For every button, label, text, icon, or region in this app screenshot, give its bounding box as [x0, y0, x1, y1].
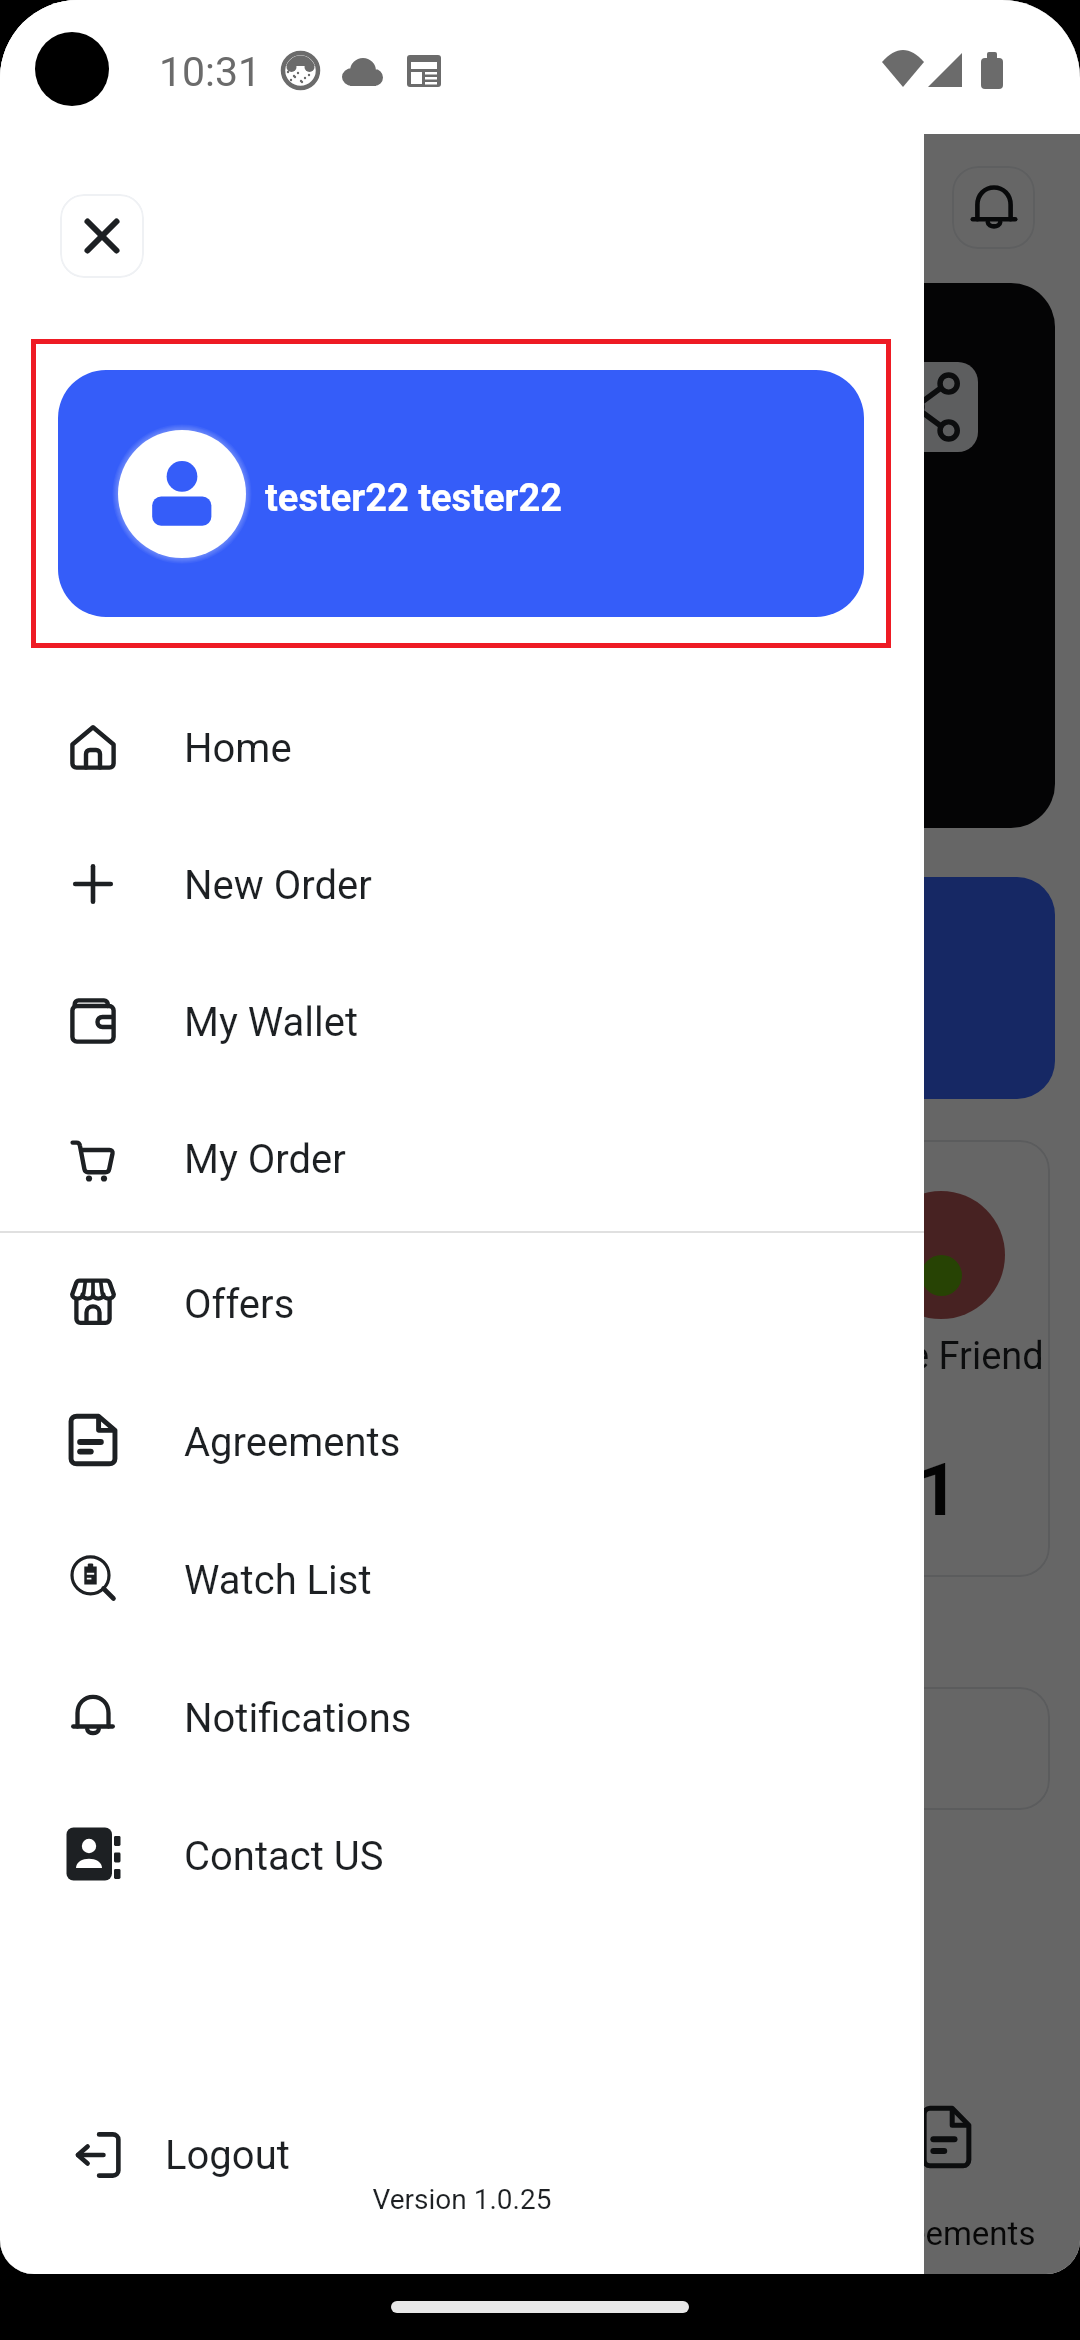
button[interactable]: Contact US: [0, 1785, 924, 1923]
button[interactable]: tester22 tester22: [58, 370, 864, 617]
button[interactable]: My Order: [0, 1089, 924, 1226]
staticText: e Friend: [909, 1334, 1044, 1379]
button[interactable]: Logout: [0, 2105, 924, 2205]
button[interactable]: Notifications: [0, 1647, 924, 1785]
staticText: Home: [184, 725, 292, 772]
staticText: New Order: [184, 862, 372, 909]
staticText: Notifications: [184, 1695, 412, 1742]
button[interactable]: Notifications: [952, 166, 1035, 249]
button[interactable]: Home: [0, 678, 924, 815]
staticText: Agreements: [184, 1419, 401, 1466]
staticText: tester22 tester22: [265, 476, 563, 521]
staticText: My Order: [184, 1136, 346, 1183]
staticText: 1: [917, 1448, 959, 1532]
staticText: My Wallet: [184, 999, 359, 1046]
button[interactable]: Offers: [0, 1233, 924, 1371]
button[interactable]: Agreements: [833, 2080, 1059, 2260]
button[interactable]: Watch List: [0, 1509, 924, 1647]
staticText: Watch List: [184, 1557, 372, 1604]
staticText: Offers: [184, 1281, 295, 1328]
button[interactable]: New Order: [0, 815, 924, 952]
staticText: Contact US: [184, 1833, 384, 1880]
button[interactable]: My Wallet: [0, 952, 924, 1089]
staticText: Agreements: [857, 2214, 1036, 2253]
button[interactable]: Agreements: [0, 1371, 924, 1509]
staticText: Logout: [165, 2132, 290, 2179]
staticText: 10:31: [159, 48, 262, 96]
button[interactable]: Close: [60, 194, 144, 278]
staticText: Version 1.0.25: [0, 2183, 924, 2216]
